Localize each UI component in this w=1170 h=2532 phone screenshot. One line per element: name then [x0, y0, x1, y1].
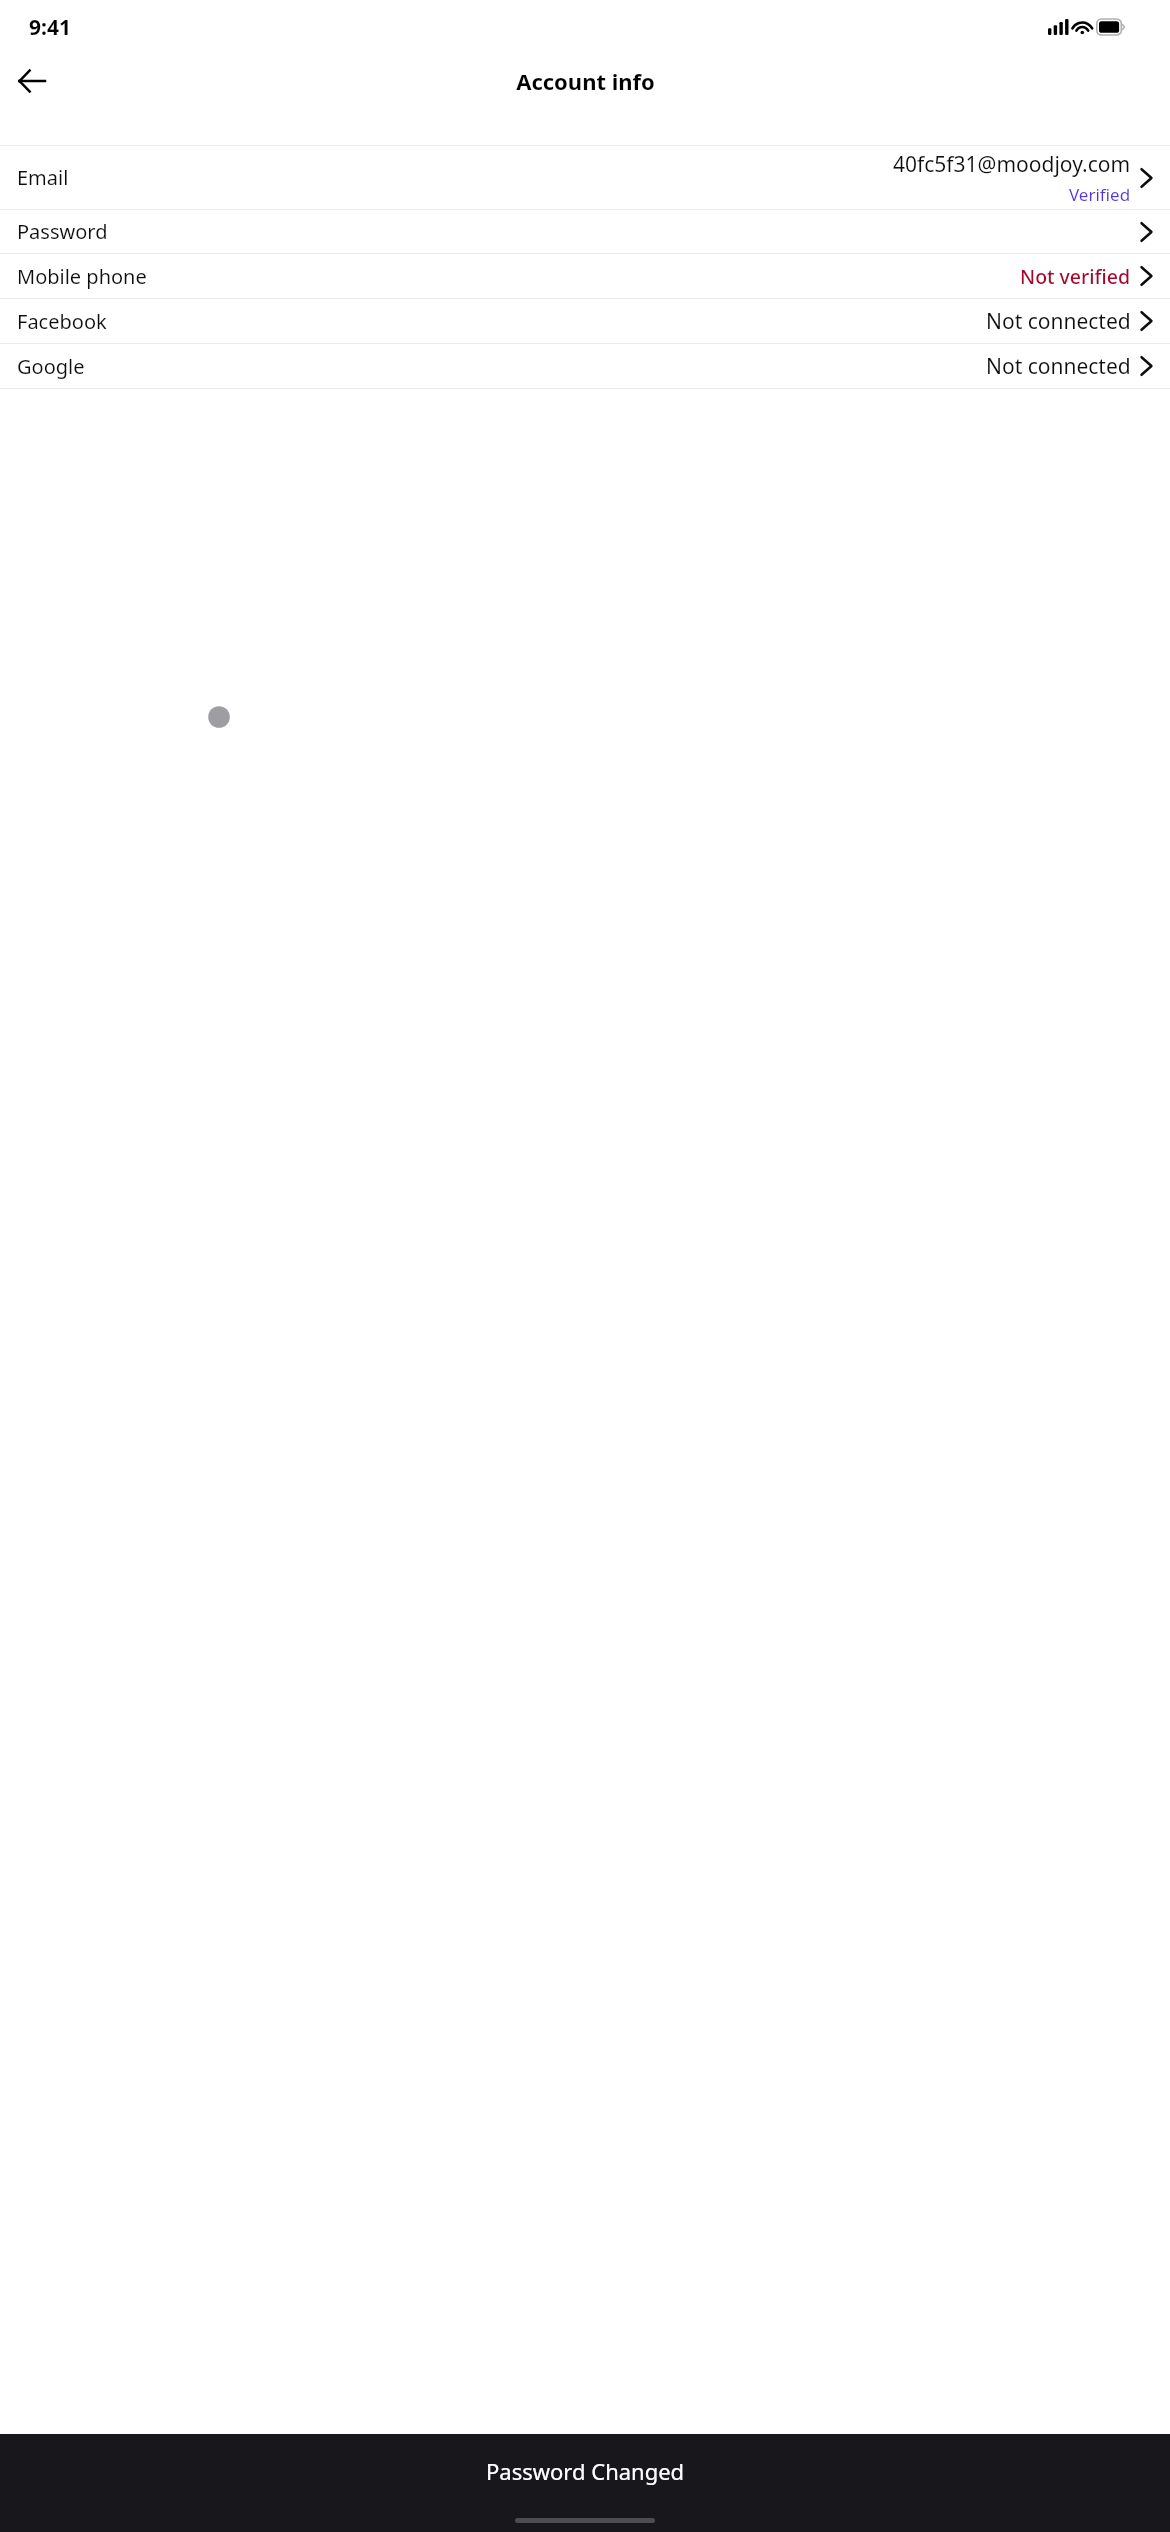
button[interactable]: Back: [8, 57, 56, 105]
button[interactable]: Facebook: [0, 299, 1170, 343]
staticText: Facebook: [17, 308, 107, 335]
button[interactable]: Email: [0, 146, 1170, 209]
staticText: 40fc5f31@moodjoy.com: [893, 150, 1131, 179]
button[interactable]: Mobile phone: [0, 254, 1170, 298]
staticText: Not connected: [986, 352, 1131, 381]
button[interactable]: Google: [0, 344, 1170, 388]
staticText: 9:41: [29, 13, 71, 42]
staticText: Not connected: [986, 307, 1131, 336]
staticText: Account info: [516, 66, 655, 96]
staticText: Not verified: [1020, 263, 1131, 290]
staticText: Email: [17, 164, 69, 191]
staticText: Google: [17, 353, 85, 380]
staticText: Password: [17, 218, 108, 245]
button[interactable]: Password: [0, 210, 1170, 253]
staticText: Mobile phone: [17, 263, 147, 290]
staticText: Verified: [1069, 183, 1131, 206]
staticText: Password Changed: [486, 2456, 685, 2486]
